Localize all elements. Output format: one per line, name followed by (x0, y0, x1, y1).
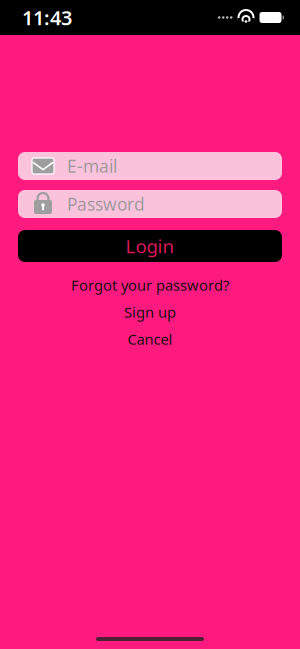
button[interactable]: Sign up (0, 301, 300, 323)
staticText: Password (67, 192, 145, 215)
button[interactable]: Forgot your password? (0, 274, 300, 296)
staticText: 11:43 (22, 4, 72, 31)
staticText: Cancel (127, 329, 172, 349)
staticText: Forgot your password? (71, 275, 229, 295)
staticText: E-mail (67, 154, 117, 177)
button[interactable]: Cancel (0, 328, 300, 350)
button[interactable]: Login (18, 230, 282, 262)
staticText: Sign up (124, 302, 176, 322)
button[interactable]: Password (18, 190, 282, 218)
staticText: Login (125, 234, 174, 258)
button[interactable]: E-mail (18, 152, 282, 180)
